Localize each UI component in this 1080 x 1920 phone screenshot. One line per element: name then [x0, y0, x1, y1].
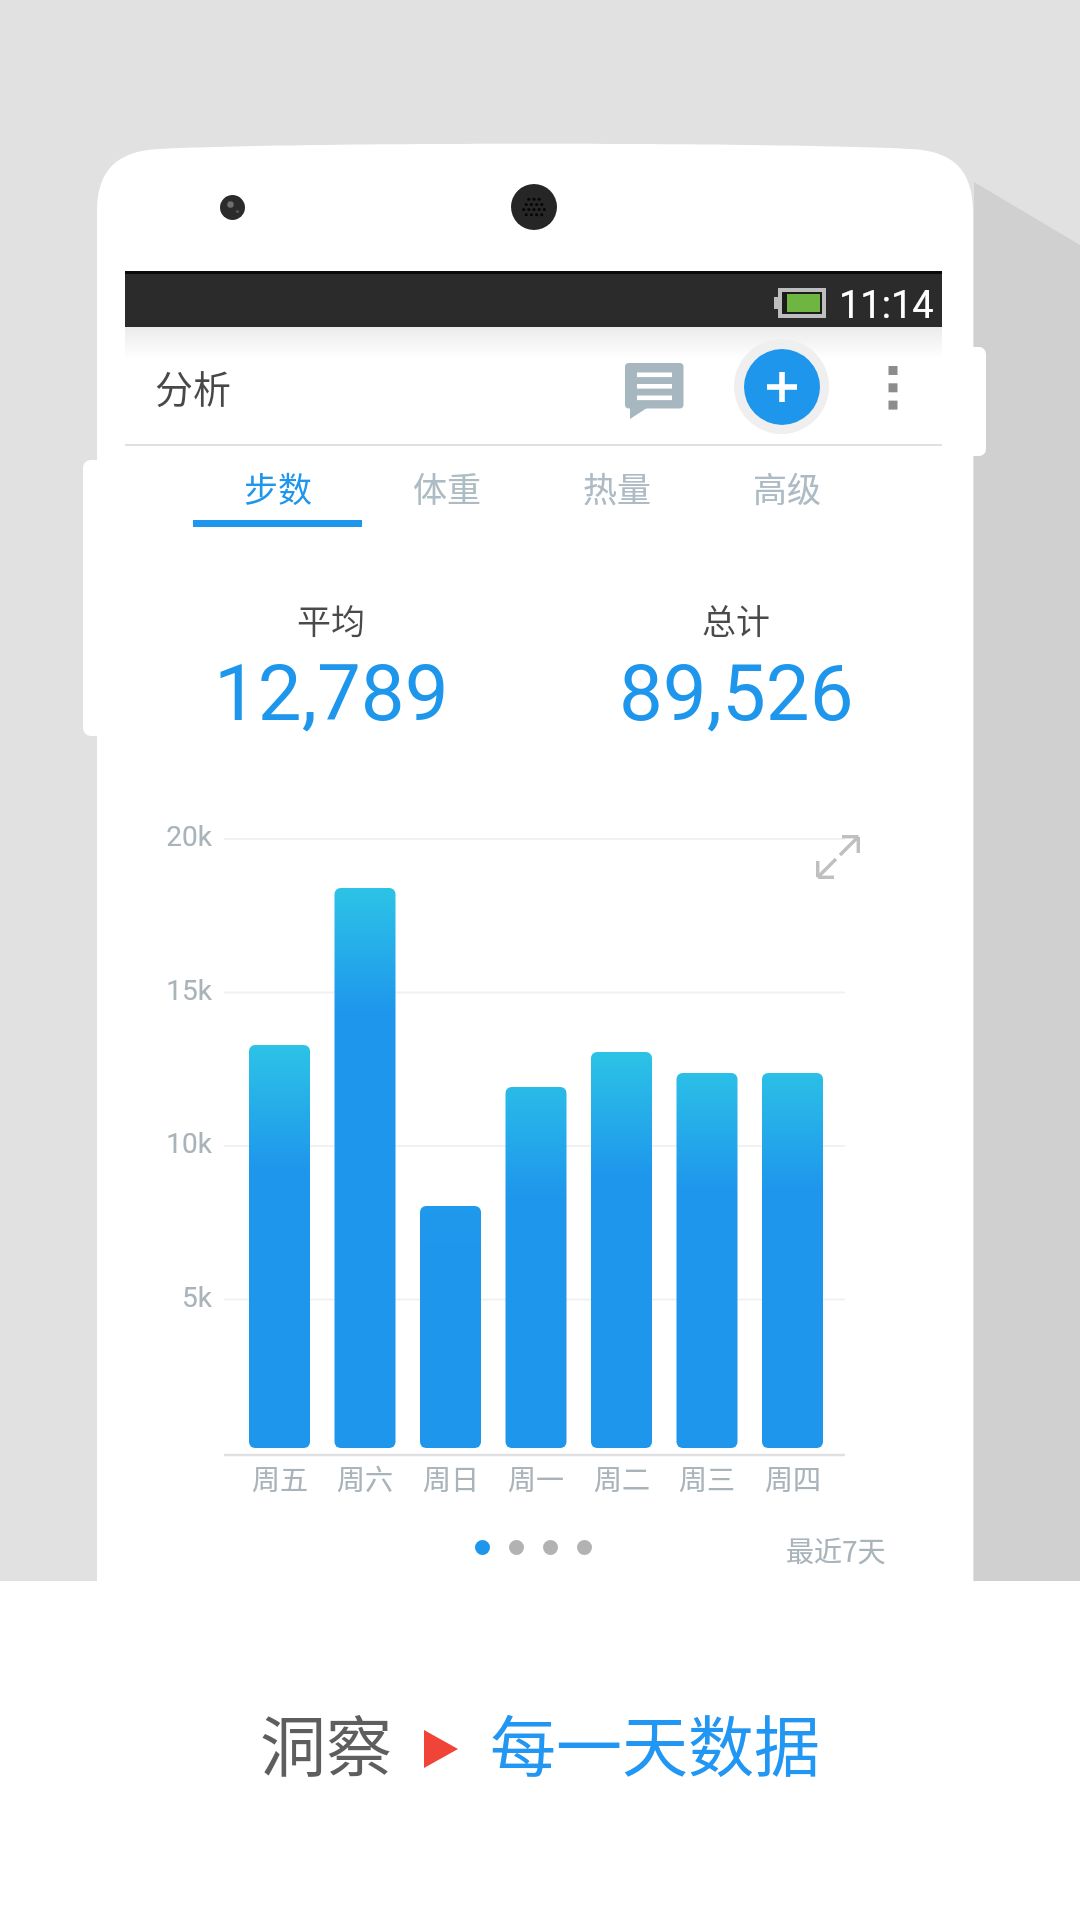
staticText: 15k [140, 974, 212, 1007]
staticText: 每一天数据 [490, 1694, 820, 1790]
button[interactable]: 体重 [362, 447, 532, 523]
staticText: 周一 [508, 1458, 565, 1499]
staticText: 分析 [155, 359, 232, 414]
button[interactable]: Expand chart [810, 829, 866, 885]
staticText: 12,789 [214, 648, 449, 739]
button[interactable]: 周一 [493, 1458, 579, 1504]
staticText: 周六 [337, 1458, 394, 1499]
staticText: 最近7天 [786, 1530, 886, 1571]
button[interactable]: 平均 [161, 585, 501, 739]
staticText: 周日 [423, 1458, 480, 1499]
staticText: 热量 [583, 463, 651, 512]
button[interactable]: 周二 [579, 1458, 665, 1504]
button[interactable]: Messages [612, 352, 692, 432]
button[interactable]: 最近7天 [774, 1518, 898, 1583]
button[interactable]: 热量 [532, 447, 702, 523]
button[interactable]: 步数 [193, 447, 363, 523]
staticText: 20k [140, 820, 212, 853]
staticText: 体重 [413, 463, 481, 512]
button[interactable]: 周三 [664, 1458, 750, 1504]
button[interactable]: Page indicator [463, 1528, 604, 1567]
staticText: 5k [140, 1281, 212, 1314]
staticText: 周五 [252, 1458, 309, 1499]
button[interactable]: Add [734, 339, 829, 434]
button[interactable]: 周六 [322, 1458, 408, 1504]
button[interactable]: 周日 [408, 1458, 494, 1504]
staticText: 周四 [765, 1458, 822, 1499]
staticText: 89,526 [619, 648, 854, 739]
button[interactable]: More options [855, 348, 931, 428]
button[interactable]: 周五 [237, 1458, 323, 1504]
staticText: 总计 [702, 595, 770, 644]
staticText: 平均 [297, 595, 365, 644]
staticText: 周三 [679, 1458, 736, 1499]
staticText: 步数 [244, 463, 312, 512]
button[interactable]: 总计 [566, 585, 906, 739]
staticText: 高级 [753, 463, 821, 512]
staticText: 10k [140, 1127, 212, 1160]
staticText: 11:14 [839, 283, 934, 328]
button[interactable]: 高级 [702, 447, 872, 523]
staticText: 周二 [594, 1458, 651, 1499]
staticText: 洞察 [260, 1694, 392, 1790]
button[interactable]: 周四 [750, 1458, 836, 1504]
